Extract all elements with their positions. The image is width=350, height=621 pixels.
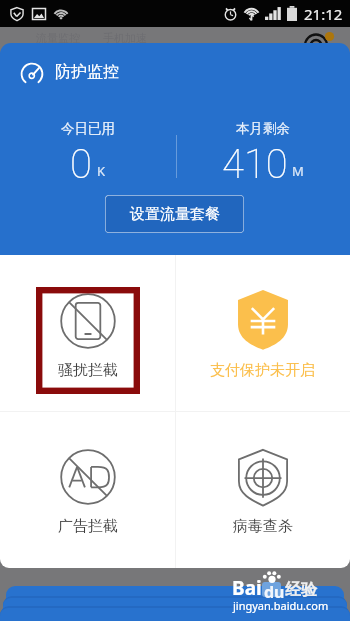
staticText: 410 bbox=[222, 141, 288, 188]
staticText: K bbox=[97, 162, 106, 180]
staticText: Bai bbox=[232, 575, 262, 601]
button[interactable]: 支付保护未开启 bbox=[175, 255, 350, 411]
button[interactable]: 骚扰拦截 bbox=[0, 255, 175, 411]
staticText: 21:12 bbox=[304, 4, 343, 24]
staticText: 流量监控 手机加速 bbox=[36, 30, 147, 45]
staticText: 病毒查杀 bbox=[233, 517, 293, 536]
staticText: 经验 bbox=[285, 580, 317, 600]
staticText: 骚扰拦截 bbox=[58, 361, 118, 380]
staticText: 设置流量套餐 bbox=[130, 205, 220, 224]
button[interactable]: 设置流量套餐 bbox=[105, 195, 244, 233]
button[interactable]: 病毒查杀 bbox=[175, 411, 350, 568]
staticText: 本月剩余 bbox=[236, 120, 290, 137]
staticText: M bbox=[292, 162, 304, 180]
button[interactable]: 广告拦截 bbox=[0, 411, 175, 568]
staticText: 支付保护未开启 bbox=[210, 361, 315, 380]
staticText: 今日已用 bbox=[61, 120, 115, 137]
other: Account bbox=[300, 28, 340, 68]
staticText: 0 bbox=[70, 141, 92, 188]
staticText: du bbox=[264, 581, 285, 603]
staticText: 防护监控 bbox=[55, 62, 119, 82]
staticText: 广告拦截 bbox=[58, 517, 118, 536]
staticText: jingyan.baidu.com bbox=[233, 598, 329, 613]
